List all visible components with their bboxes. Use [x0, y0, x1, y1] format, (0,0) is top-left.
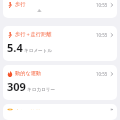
staticText: 10:55 — [96, 71, 108, 77]
staticText: 309 — [7, 79, 26, 94]
staticText: キロカロリー — [27, 87, 56, 93]
staticText: 歩 — [37, 9, 42, 12]
staticText: 10:55 — [96, 2, 108, 8]
button[interactable]: 動的な運動 — [3, 65, 117, 100]
staticText: 歩行不均等 — [15, 109, 41, 110]
staticText: 10:55 — [96, 32, 108, 38]
staticText: 歩行＋走行距離 — [15, 31, 52, 38]
button[interactable]: 歩行 — [3, 0, 117, 18]
staticText: 歩行 — [15, 1, 26, 8]
button[interactable]: 歩行＋走行距離 — [3, 26, 117, 61]
staticText: 動的な運動 — [15, 70, 42, 77]
staticText: キロメートル — [24, 48, 53, 54]
button[interactable]: 歩行不均等 — [3, 104, 117, 120]
staticText: 5.4 — [7, 40, 23, 55]
